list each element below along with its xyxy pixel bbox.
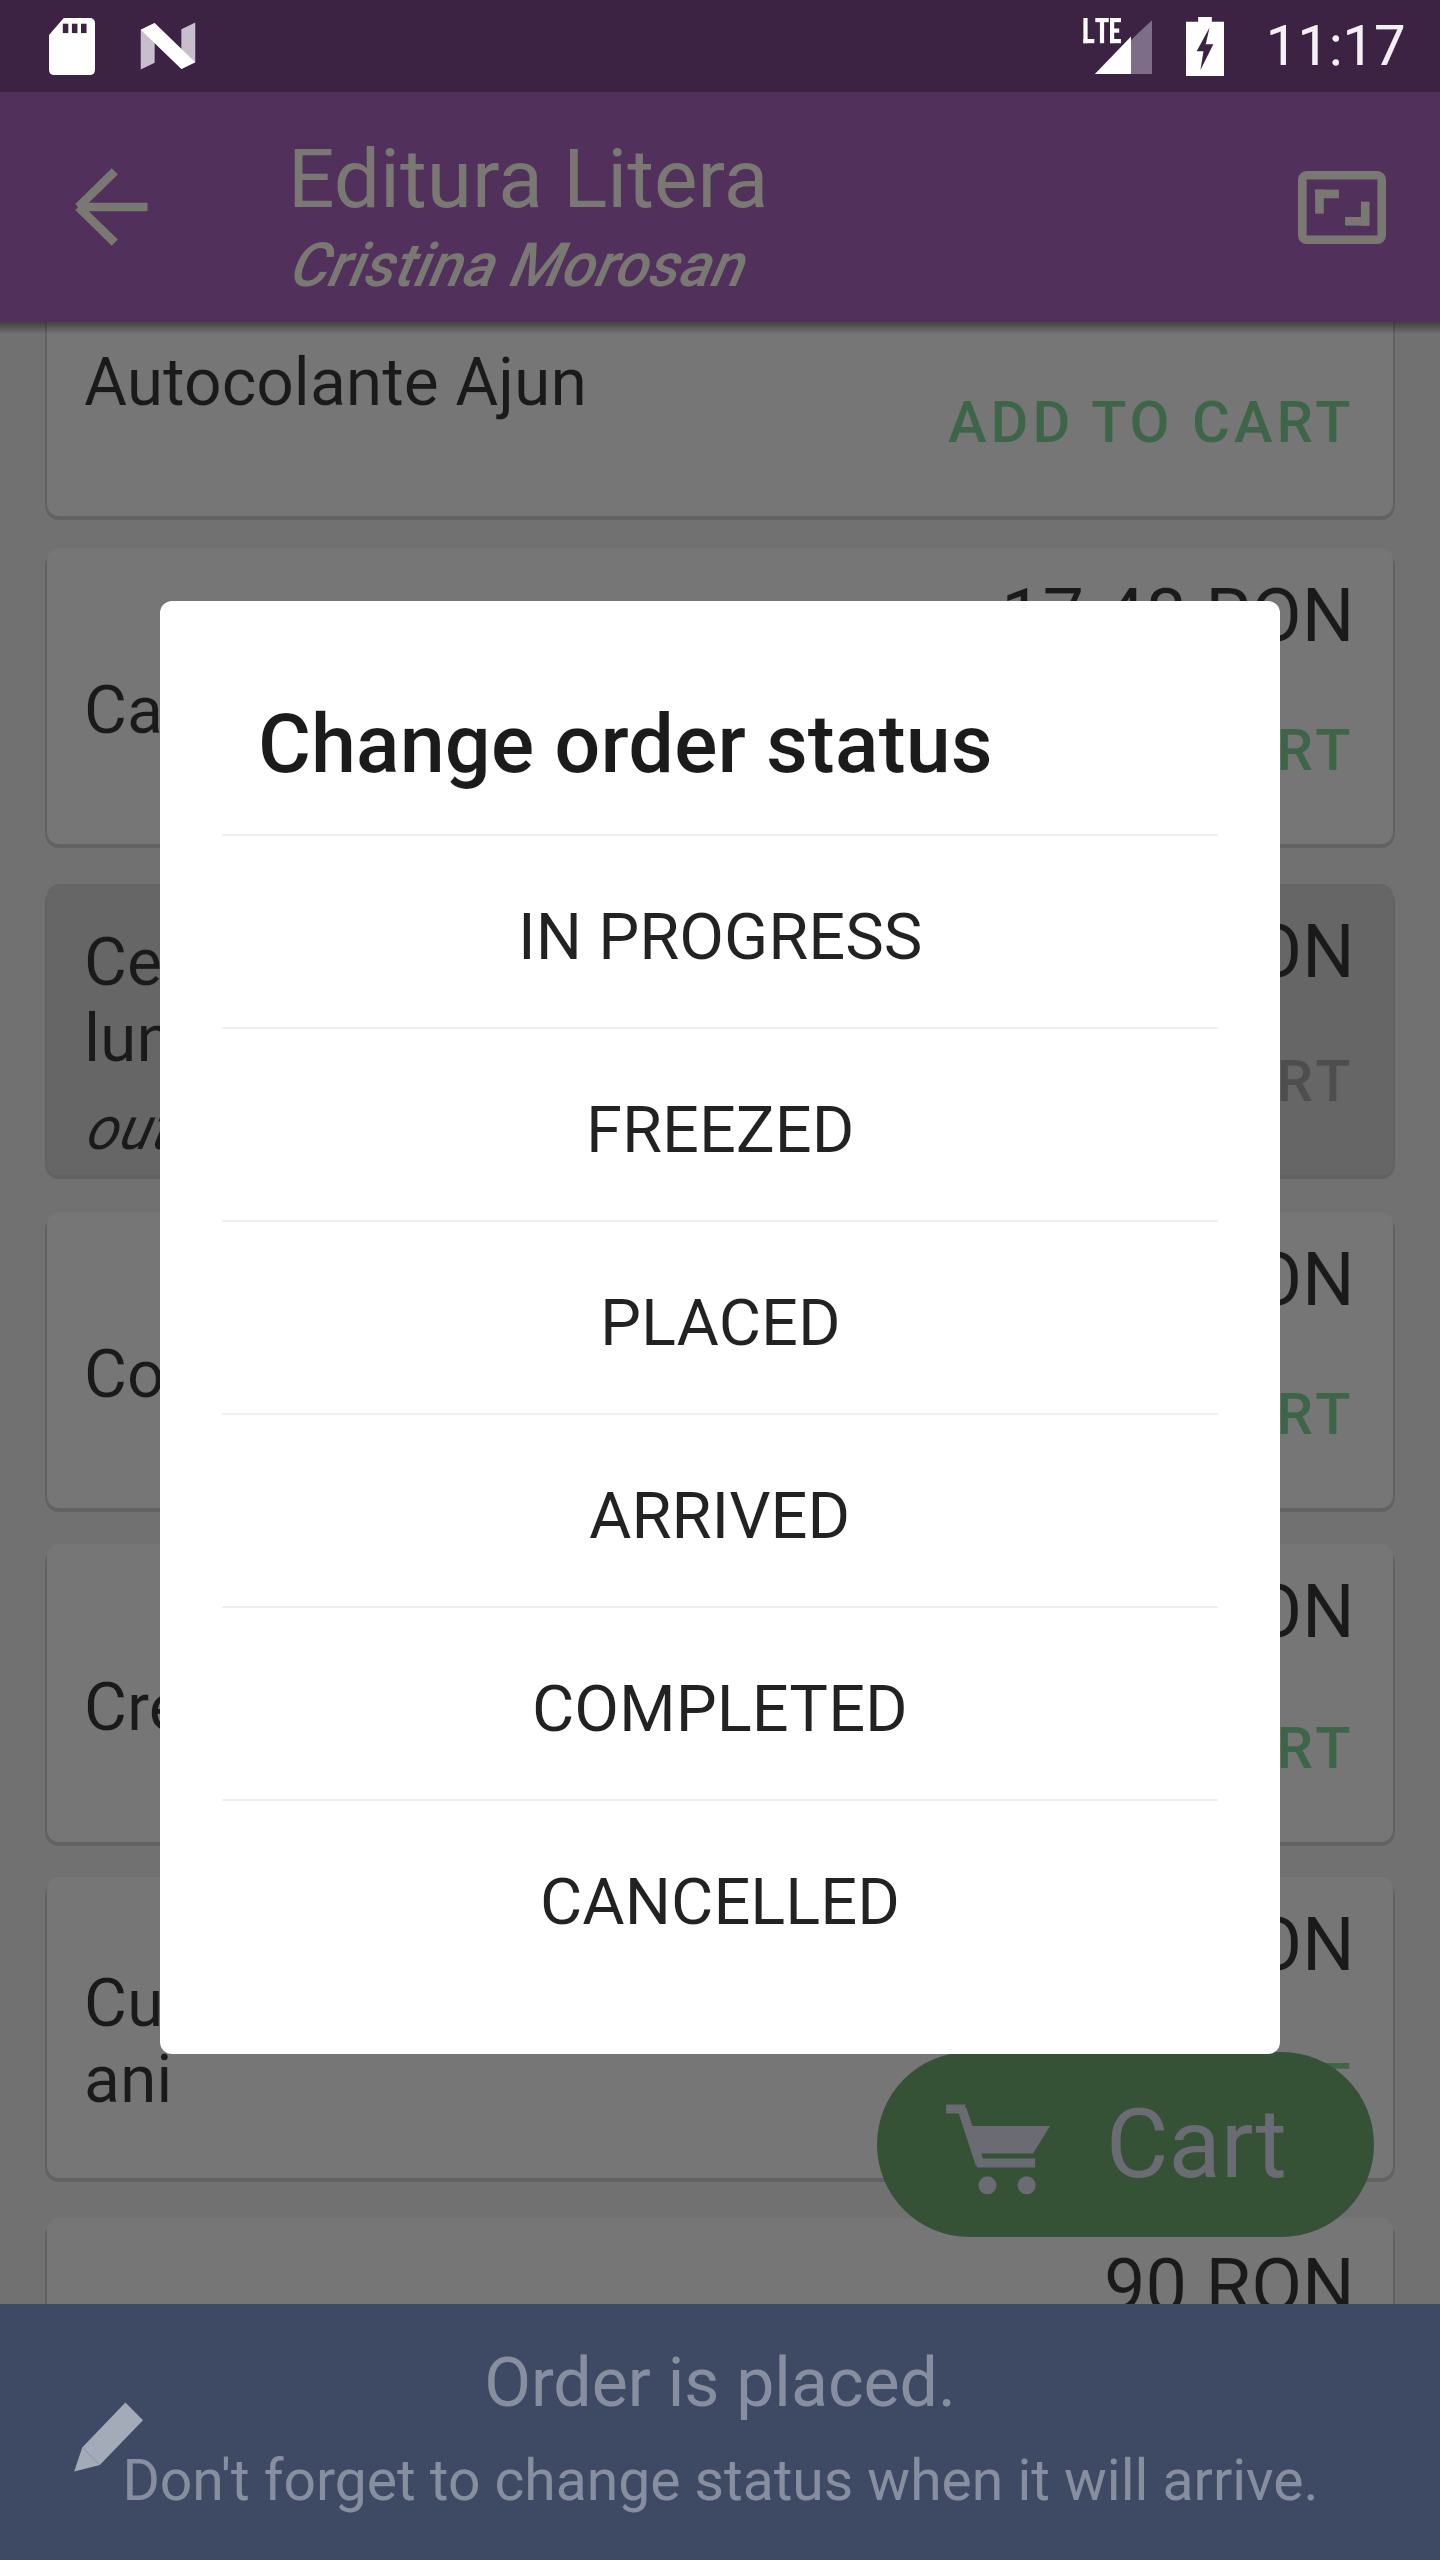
staticText: 14 RON [1104, 322, 1355, 331]
staticText: 11:17 [1266, 13, 1406, 79]
staticText: Order is placed. [484, 2343, 956, 2423]
button[interactable]: Cart [877, 2052, 1374, 2237]
staticText: PLACED [600, 1285, 841, 1361]
staticText: Don't forget to change status when it wi… [122, 2447, 1319, 2514]
staticText: 90 RON [1104, 2242, 1355, 2304]
staticText: Ce se intampla cand lunga noapte [84, 924, 682, 1077]
staticText: Autocolante Ajun [84, 344, 587, 421]
staticText: ARRIVED [589, 1478, 851, 1554]
button[interactable]: PLACED [160, 1222, 1280, 1413]
staticText: ADD TO CART [948, 1380, 1355, 1448]
staticText: 90 RON [1104, 1901, 1355, 1988]
staticText: Calendar de Craciun [84, 672, 675, 749]
staticText: 17.48 RON [1001, 572, 1355, 659]
staticText: 30 RON [1104, 1236, 1355, 1323]
staticText: Cart [1106, 2088, 1287, 2201]
button[interactable]: IN PROGRESS [160, 836, 1280, 1027]
button[interactable]: ADD TO CART [932, 1027, 1371, 1135]
button[interactable]: ADD TO CART [932, 696, 1371, 804]
button[interactable]: CANCELLED [160, 1801, 1280, 1992]
staticText: out of stock [84, 1093, 393, 1163]
button[interactable]: ADD TO CART [932, 1360, 1371, 1468]
button[interactable]: 90 RON [47, 1877, 1393, 2178]
staticText: 24 RON [1104, 908, 1355, 995]
button[interactable]: Back [0, 92, 222, 322]
button[interactable]: 17.48 RON [47, 548, 1393, 844]
staticText: Cristina Morosan [288, 229, 743, 300]
staticText: ADD TO CART [948, 388, 1355, 456]
staticText: FREEZED [586, 1092, 855, 1168]
staticText: Cu mic cu mare de ani [84, 1965, 631, 2118]
staticText: CANCELLED [540, 1864, 900, 1940]
button[interactable]: 24 RON [47, 884, 1393, 1175]
staticText: ADD TO CART [948, 2050, 1355, 2118]
button[interactable]: 30 RON [47, 1212, 1393, 1508]
staticText: Creion colorat [84, 1669, 495, 1746]
button[interactable]: ADD TO CART [932, 2030, 1371, 2138]
staticText: ADD TO CART [948, 1714, 1355, 1782]
staticText: ADD TO CART [948, 1047, 1355, 1115]
staticText: Colind de Craciun [84, 1336, 599, 1413]
button[interactable]: COMPLETED [160, 1608, 1280, 1799]
other: Edit [71, 2393, 151, 2473]
staticText: IN PROGRESS [518, 899, 923, 975]
staticText: Editura Litera [288, 131, 769, 227]
button[interactable]: 14 RON [47, 322, 1393, 516]
button[interactable]: ARRIVED [160, 1415, 1280, 1606]
staticText: ADD TO CART [948, 716, 1355, 784]
button[interactable]: 18 RON [47, 1544, 1393, 1842]
staticText: COMPLETED [532, 1671, 908, 1747]
button[interactable]: ADD TO CART [932, 368, 1371, 476]
button[interactable]: Fullscreen [1244, 92, 1440, 322]
staticText: 18 RON [1104, 1568, 1355, 1655]
button[interactable]: ADD TO CART [932, 1694, 1371, 1802]
button[interactable]: 90 RON [47, 2218, 1393, 2304]
staticText: Change order status [258, 697, 993, 792]
button[interactable]: FREEZED [160, 1029, 1280, 1220]
